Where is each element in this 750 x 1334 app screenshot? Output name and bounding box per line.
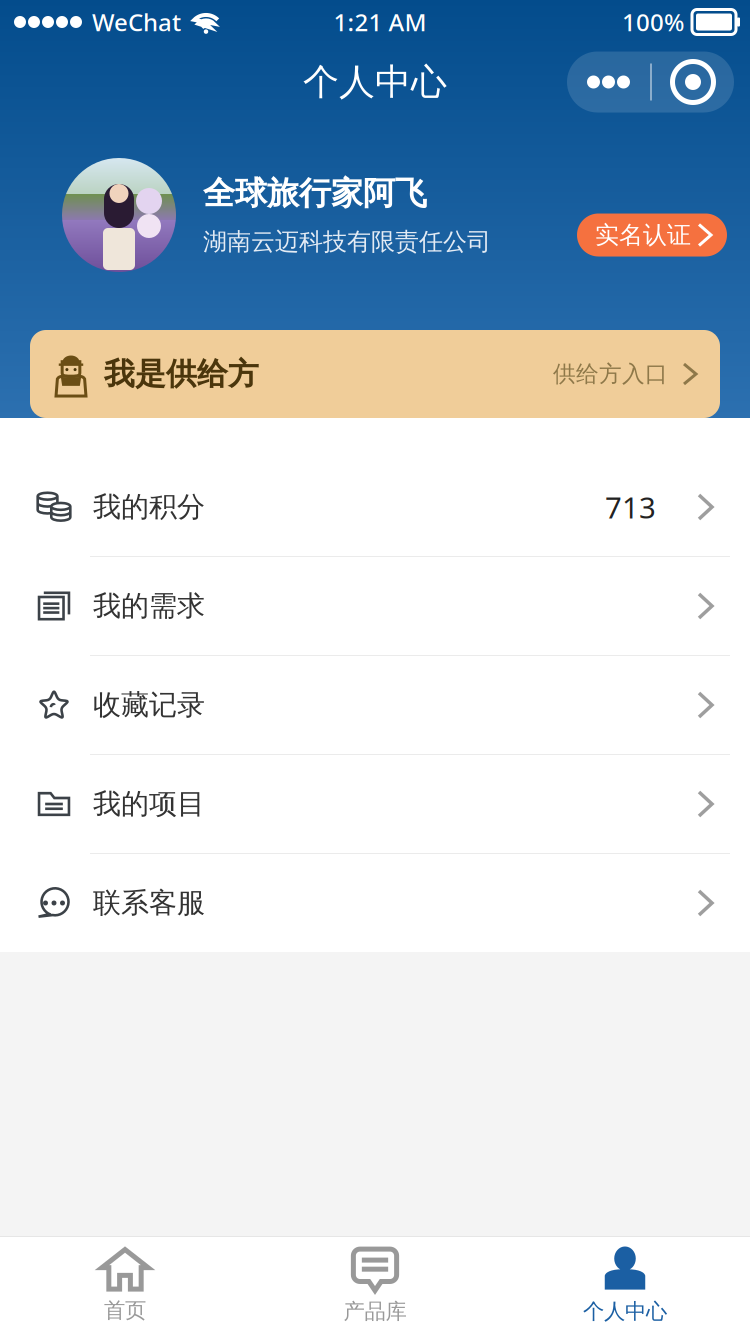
staticText: 收藏记录: [93, 688, 205, 722]
staticText: 我的积分: [93, 490, 205, 524]
staticText: WeChat: [92, 6, 181, 38]
staticText: 713: [605, 487, 656, 526]
button[interactable]: 产品库: [250, 1237, 500, 1334]
staticText: 我的需求: [93, 589, 205, 623]
button[interactable]: 实名认证: [577, 213, 727, 256]
button[interactable]: 我的需求: [0, 557, 750, 655]
staticText: 湖南云迈科技有限责任公司: [203, 227, 491, 256]
button[interactable]: 联系客服: [0, 854, 750, 952]
button[interactable]: 我的项目: [0, 755, 750, 853]
staticText: 我是供给方: [104, 355, 259, 393]
staticText: 个人中心: [303, 60, 447, 104]
staticText: 实名认证: [595, 220, 691, 250]
button[interactable]: More: [567, 51, 650, 112]
button[interactable]: 我是供给方: [30, 330, 720, 418]
staticText: 全球旅行家阿飞: [203, 174, 427, 213]
staticText: 个人中心: [583, 1298, 667, 1325]
button[interactable]: 个人中心: [500, 1237, 750, 1334]
button[interactable]: 收藏记录: [0, 656, 750, 754]
button[interactable]: 首页: [0, 1237, 250, 1334]
staticText: 首页: [104, 1297, 146, 1324]
staticText: 联系客服: [93, 886, 205, 920]
button[interactable]: Close: [652, 51, 734, 112]
staticText: 我的项目: [93, 787, 205, 821]
staticText: 1:21 AM: [333, 6, 426, 38]
staticText: 100%: [622, 6, 684, 38]
staticText: 供给方入口: [553, 360, 668, 388]
button[interactable]: 我的积分: [0, 458, 750, 556]
staticText: 产品库: [343, 1298, 406, 1325]
